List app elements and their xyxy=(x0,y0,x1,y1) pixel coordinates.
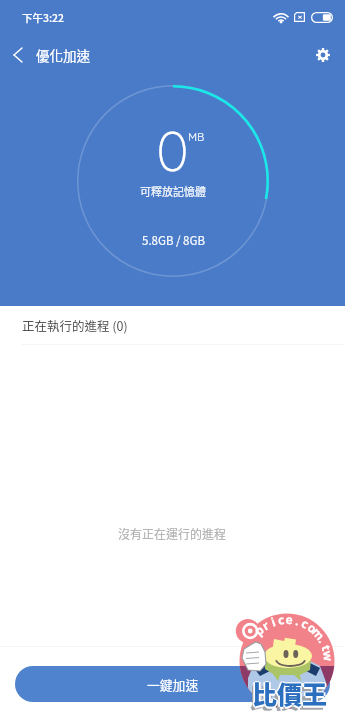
staticText: 優化加速 xyxy=(36,45,90,65)
staticText: 正在執行的進程 (0) xyxy=(22,316,128,334)
staticText: 0 xyxy=(156,115,189,185)
staticText: 一鍵加速 xyxy=(147,675,199,694)
staticText: 下午3:22 xyxy=(22,10,65,25)
staticText: 5.8GB / 8GB xyxy=(142,232,205,249)
staticText: MB xyxy=(188,130,205,144)
staticText: 沒有正在運行的進程 xyxy=(118,525,227,542)
button[interactable]: 一鍵加速 xyxy=(15,666,330,702)
button[interactable]: Settings xyxy=(301,34,345,76)
staticText: 可釋放記憶體 xyxy=(140,183,206,199)
button[interactable]: Back xyxy=(0,34,36,76)
